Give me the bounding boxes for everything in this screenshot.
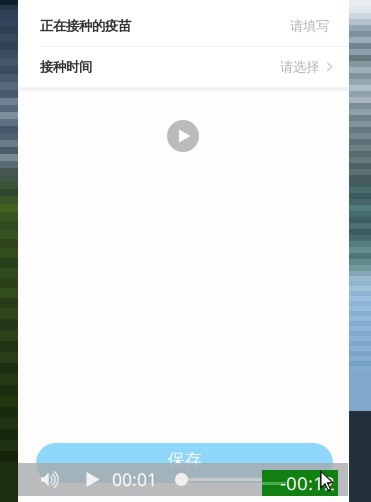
button[interactable]: 接种时间	[18, 47, 349, 87]
button[interactable]: Play video	[167, 120, 199, 152]
staticText: 00:01	[112, 468, 157, 491]
button[interactable]: 正在接种的疫苗	[18, 6, 349, 46]
staticText: 接种时间	[40, 59, 92, 75]
button[interactable]: Mute	[39, 463, 61, 496]
staticText: 正在接种的疫苗	[40, 18, 131, 34]
button[interactable]: Play	[83, 463, 103, 496]
button[interactable]: 保存	[36, 443, 333, 483]
staticText: -00:12	[280, 471, 335, 495]
staticText: 请填写	[290, 18, 329, 34]
staticText: 请选择	[280, 59, 319, 75]
staticText: 保存	[167, 449, 201, 471]
